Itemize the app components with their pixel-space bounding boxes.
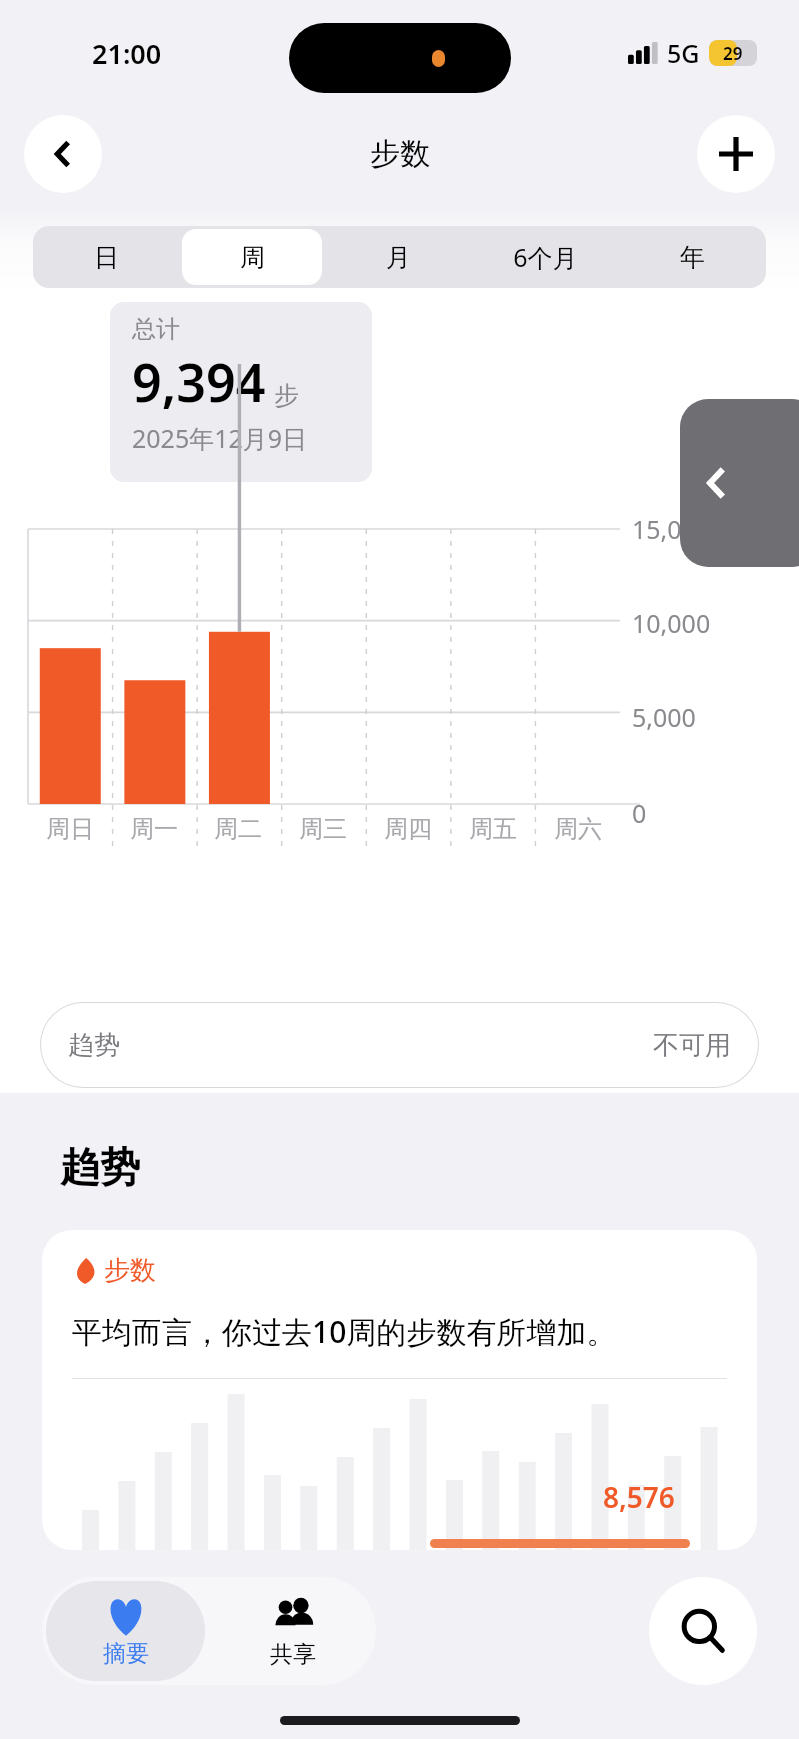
staticText: 周 <box>240 242 265 273</box>
button[interactable]: 趋势 <box>40 1002 759 1088</box>
button[interactable]: 共享 <box>209 1577 376 1685</box>
staticText: 步 <box>274 380 299 411</box>
staticText: 周五 <box>469 814 517 844</box>
button[interactable]: Previous <box>680 399 799 567</box>
staticText: 周日 <box>46 814 94 844</box>
button[interactable]: 摘要 <box>46 1581 205 1681</box>
staticText: 8,576 <box>603 1478 675 1516</box>
staticText: 总计 <box>132 314 180 344</box>
staticText: 摘要 <box>103 1639 149 1668</box>
staticText: 步数 <box>370 135 430 173</box>
button[interactable]: 日 <box>36 229 176 285</box>
button[interactable]: Search <box>649 1577 757 1685</box>
staticText: 2025年12月9日 <box>132 421 308 455</box>
staticText: 周六 <box>554 814 602 844</box>
staticText: 周四 <box>384 814 432 844</box>
staticText: 29 <box>723 42 743 65</box>
staticText: 21:00 <box>92 35 162 72</box>
staticText: 周一 <box>130 814 178 844</box>
staticText: 步数 <box>104 1254 156 1287</box>
staticText: 趋势 <box>60 1142 140 1192</box>
staticText: 5G <box>667 36 700 70</box>
button[interactable]: Add <box>697 115 775 193</box>
button[interactable]: 步数 <box>42 1230 757 1550</box>
staticText: 共享 <box>270 1640 316 1669</box>
staticText: 9,394 <box>132 346 266 417</box>
button[interactable]: 月 <box>328 229 469 285</box>
staticText: 不可用 <box>653 1029 731 1062</box>
staticText: 6个月 <box>513 240 578 274</box>
staticText: 10,000 <box>632 606 711 640</box>
button[interactable]: 6个月 <box>475 229 616 285</box>
button[interactable]: 年 <box>622 229 763 285</box>
staticText: 5,000 <box>632 700 696 734</box>
button[interactable]: Back <box>24 115 102 193</box>
staticText: 月 <box>386 242 411 273</box>
button[interactable]: 周 <box>182 229 322 285</box>
staticText: 周二 <box>214 814 262 844</box>
staticText: 趋势 <box>68 1029 120 1062</box>
staticText: 15,0 <box>632 512 682 546</box>
staticText: 日 <box>94 242 119 273</box>
staticText: 平均而言，你过去10周的步数有所增加。 <box>72 1311 617 1352</box>
staticText: 周三 <box>299 814 347 844</box>
staticText: 年 <box>680 242 705 273</box>
staticText: 0 <box>632 796 647 830</box>
